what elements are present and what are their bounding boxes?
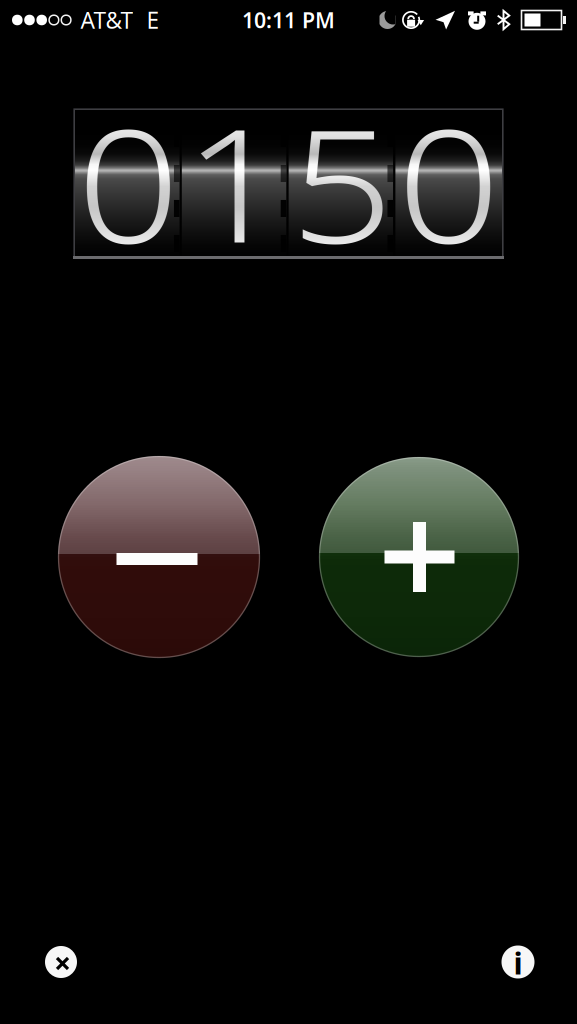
button[interactable]: Decrement [58, 456, 260, 658]
staticText: 10:11 PM [242, 6, 335, 34]
button[interactable]: Close [32, 933, 90, 991]
staticText: AT&T [80, 5, 133, 35]
button[interactable]: Increment [319, 457, 519, 657]
staticText: i [513, 942, 522, 983]
staticText: E [146, 5, 159, 35]
button[interactable]: Info [489, 933, 547, 991]
